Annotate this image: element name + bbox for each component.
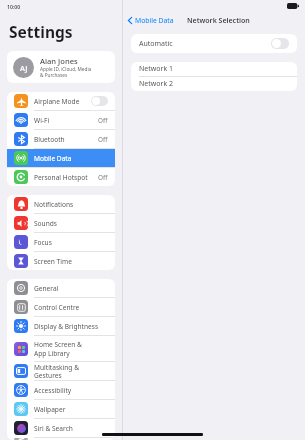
staticText: General	[34, 284, 59, 293]
button[interactable]: Airplane Mode toggle	[91, 96, 108, 106]
staticText: Sounds	[34, 219, 57, 228]
staticText: Wallpaper	[34, 405, 66, 414]
staticText: Screen Time	[34, 257, 72, 266]
staticText: Automatic	[139, 39, 271, 49]
staticText: 10:00	[7, 3, 21, 10]
staticText: Airplane Mode	[34, 97, 80, 106]
button[interactable]: Accessibility	[7, 381, 115, 399]
button[interactable]: General	[7, 279, 115, 297]
button[interactable]: Mobile Data	[7, 149, 115, 167]
staticText: Bluetooth	[34, 135, 65, 144]
staticText: Mobile Data	[34, 154, 72, 163]
button[interactable]: Mobile Data	[123, 14, 178, 27]
staticText: Home Screen &	[34, 340, 82, 349]
staticText: Siri & Search	[34, 424, 73, 433]
button[interactable]: Personal Hotspot	[7, 168, 115, 186]
staticText: Off	[98, 135, 108, 144]
staticText: AJ	[20, 63, 28, 73]
button[interactable]: Screen Time	[7, 252, 115, 270]
button[interactable]: Display & Brightness	[7, 317, 115, 335]
staticText: Apple ID, iCloud, Media	[40, 66, 92, 72]
staticText: Network 1	[139, 64, 173, 74]
button[interactable]: Wi-Fi	[7, 111, 115, 129]
button[interactable]: Network 1	[131, 62, 297, 76]
staticText: App Library	[34, 349, 70, 358]
button[interactable]: Control Centre	[7, 298, 115, 316]
staticText: Mobile Data	[135, 16, 174, 25]
button[interactable]: AJ	[7, 51, 115, 83]
button[interactable]: Multitasking & Gestures	[7, 362, 115, 380]
staticText: Notifications	[34, 200, 74, 209]
button[interactable]: Home Screen &	[7, 336, 115, 361]
staticText: & Purchases	[40, 72, 68, 78]
button[interactable]: Apple Pencil	[7, 438, 115, 440]
staticText: Wi-Fi	[34, 116, 50, 125]
staticText: Network Selection	[187, 16, 250, 26]
staticText: Personal Hotspot	[34, 173, 88, 182]
staticText: Settings	[9, 21, 73, 42]
button[interactable]: Bluetooth	[7, 130, 115, 148]
staticText: Accessibility	[34, 386, 72, 395]
staticText: Alan Jones	[40, 56, 78, 66]
button[interactable]: Automatic	[131, 34, 297, 53]
staticText: Network 2	[139, 79, 173, 89]
staticText: Display & Brightness	[34, 322, 99, 331]
staticText: Focus	[34, 238, 52, 247]
button[interactable]: Notifications	[7, 195, 115, 213]
button[interactable]: Siri & Search	[7, 419, 115, 437]
button[interactable]: Network 2	[131, 77, 297, 91]
button[interactable]: Wallpaper	[7, 400, 115, 418]
staticText: Off	[98, 116, 108, 125]
button[interactable]: Sounds	[7, 214, 115, 232]
staticText: Off	[98, 173, 108, 182]
staticText: Multitasking & Gestures	[34, 363, 108, 380]
button[interactable]: Automatic toggle	[271, 38, 289, 49]
staticText: Control Centre	[34, 303, 80, 312]
button[interactable]: Airplane Mode	[7, 92, 115, 110]
button[interactable]: Focus	[7, 233, 115, 251]
